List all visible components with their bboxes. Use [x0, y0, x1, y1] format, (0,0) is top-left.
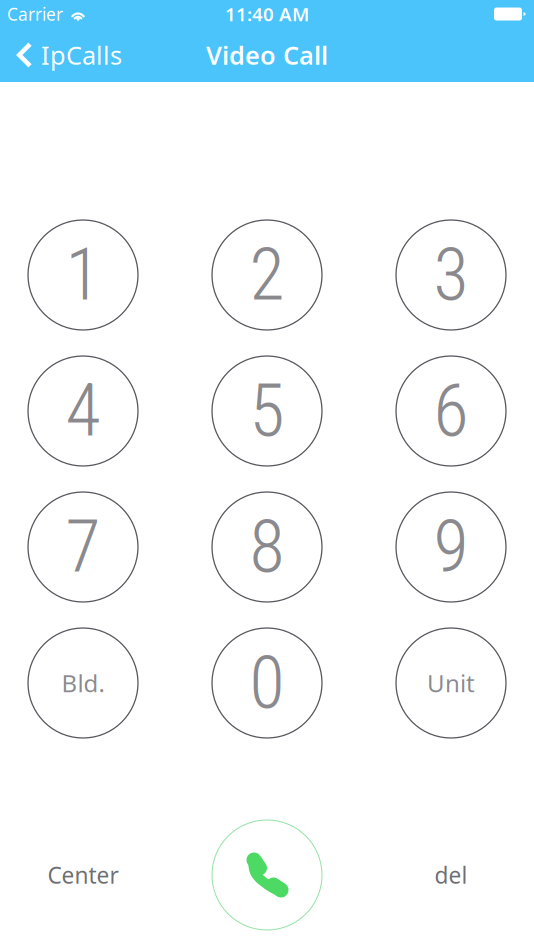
button[interactable]: 2	[212, 220, 322, 330]
button[interactable]: Center	[28, 820, 138, 930]
button[interactable]: 8	[212, 492, 322, 602]
button[interactable]: 1	[28, 220, 138, 330]
staticText: 4	[65, 369, 100, 453]
staticText: IpCalls	[41, 38, 122, 72]
staticText: 5	[249, 369, 284, 453]
button[interactable]: 9	[396, 492, 506, 602]
staticText: 0	[249, 641, 284, 725]
staticText: Carrier	[7, 2, 63, 25]
staticText: 8	[249, 505, 284, 589]
staticText: Unit	[427, 667, 475, 699]
button[interactable]: 0	[212, 628, 322, 738]
staticText: 1	[65, 233, 100, 317]
staticText: 9	[433, 505, 468, 589]
staticText: 7	[65, 505, 100, 589]
staticText: 3	[433, 233, 468, 317]
button[interactable]: Unit	[396, 628, 506, 738]
button[interactable]: 3	[396, 220, 506, 330]
button[interactable]: 4	[28, 356, 138, 466]
staticText: del	[434, 860, 467, 890]
button[interactable]: Call	[212, 820, 322, 930]
staticText: Bld.	[61, 667, 104, 699]
staticText: 11:40 AM	[225, 2, 309, 26]
staticText: Center	[47, 860, 118, 890]
button[interactable]: Bld.	[28, 628, 138, 738]
button[interactable]: del	[396, 820, 506, 930]
staticText: 2	[249, 233, 284, 317]
button[interactable]: 5	[212, 356, 322, 466]
button[interactable]: 7	[28, 492, 138, 602]
staticText: Video Call	[206, 38, 328, 72]
staticText: 6	[433, 369, 468, 453]
button[interactable]: IpCalls	[0, 28, 136, 82]
button[interactable]: 6	[396, 356, 506, 466]
